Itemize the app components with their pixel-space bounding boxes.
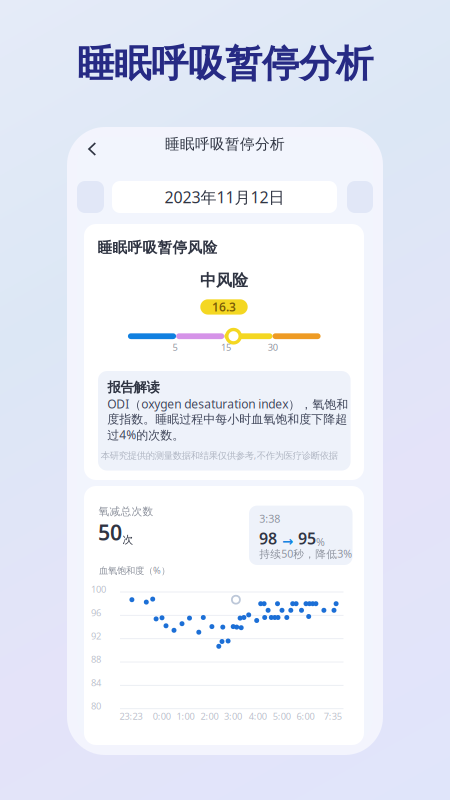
staticText: 次 xyxy=(123,533,134,546)
staticText: 2023年11月12日 xyxy=(164,186,284,208)
staticText: 报告解读 xyxy=(107,379,159,395)
staticText: 氧减总次数 xyxy=(99,505,154,518)
staticText: 3:38 xyxy=(259,512,280,526)
staticText: 84 xyxy=(91,676,101,689)
staticText: 中风险 xyxy=(200,271,248,290)
staticText: 16.3 xyxy=(212,299,236,315)
staticText: 3:00 xyxy=(224,710,242,722)
staticText: 本研究提供的测量数据和结果仅供参考,不作为医疗诊断依据 xyxy=(101,449,338,461)
staticText: 5 xyxy=(172,341,177,353)
button[interactable]: 2023年11月12日 xyxy=(112,181,337,213)
staticText: 88 xyxy=(91,653,101,665)
staticText: 23:23 xyxy=(119,710,142,722)
staticText: 6:00 xyxy=(296,710,314,722)
staticText: 睡眠呼吸暂停风险 xyxy=(97,239,217,257)
staticText: 50 xyxy=(98,518,122,546)
staticText: 持续50秒，降低3% xyxy=(259,547,352,561)
staticText: 96 xyxy=(91,606,101,619)
staticText: 95 xyxy=(298,528,316,549)
staticText: 睡眠呼吸暂停分析 xyxy=(165,135,285,153)
staticText: 7:35 xyxy=(324,710,342,722)
staticText: 100 xyxy=(91,583,106,595)
staticText: 血氧饱和度（%） xyxy=(99,564,170,576)
staticText: 80 xyxy=(91,700,101,712)
staticText: % xyxy=(316,535,325,549)
staticText: 15 xyxy=(221,341,231,353)
staticText: 92 xyxy=(91,630,101,642)
staticText: 0:00 xyxy=(153,710,171,722)
staticText: 睡眠呼吸暂停分析 xyxy=(77,41,373,87)
staticText: 1:00 xyxy=(176,710,194,722)
button[interactable]: Back xyxy=(88,142,110,164)
staticText: 2:00 xyxy=(200,710,218,722)
staticText: → xyxy=(277,534,298,549)
staticText: 98 xyxy=(259,528,277,549)
staticText: 4:00 xyxy=(249,710,267,722)
staticText: ODI（oxygen desaturation index），氧饱和度指数。睡眠… xyxy=(107,396,348,443)
staticText: 5:00 xyxy=(273,710,291,722)
staticText: 30 xyxy=(268,341,278,353)
